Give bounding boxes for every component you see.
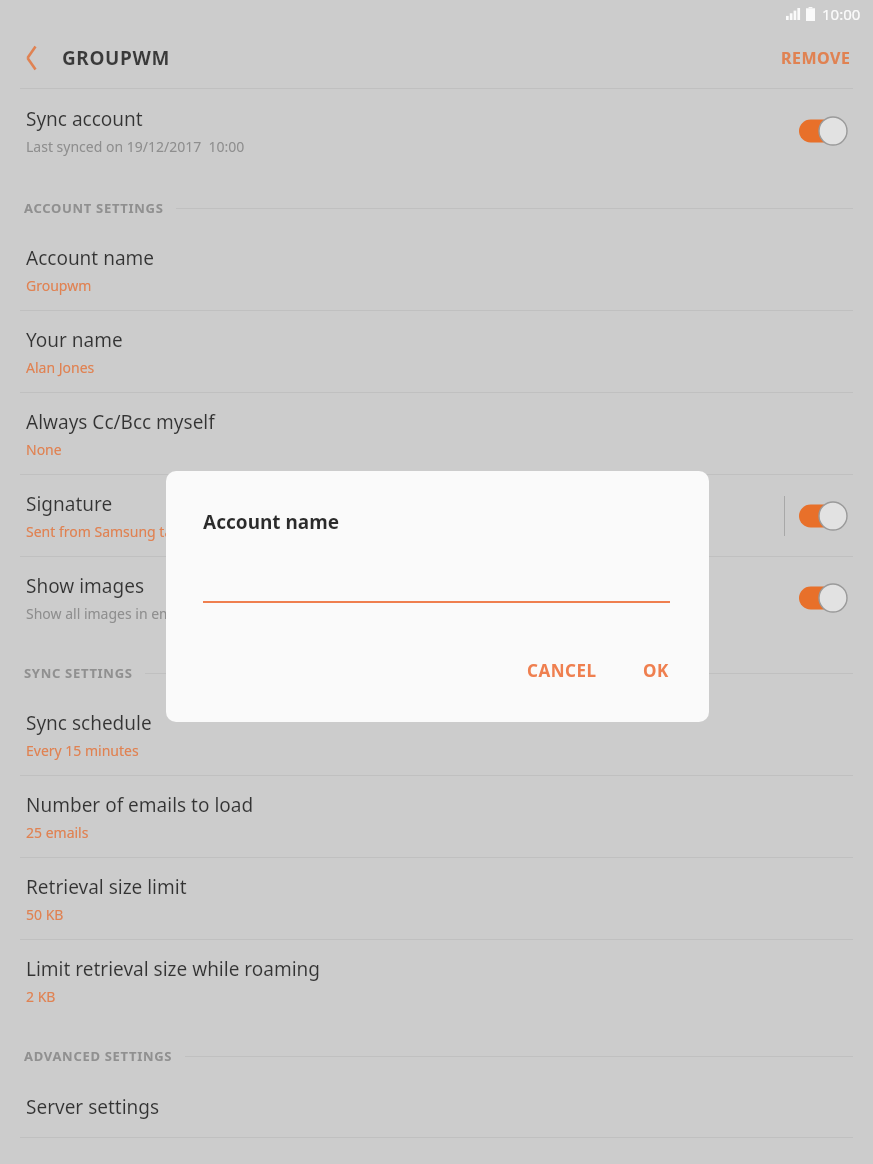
staticText: Server settings — [26, 1094, 160, 1120]
button[interactable]: Signature — [0, 475, 873, 556]
button[interactable]: Always Cc/Bcc myself — [0, 393, 873, 474]
staticText: Sent from Samsung tablet — [26, 522, 198, 541]
staticText: Sync schedule — [26, 710, 152, 736]
staticText: ACCOUNT SETTINGS — [24, 199, 164, 217]
staticText: Number of emails to load — [26, 792, 254, 818]
button[interactable]: CANCEL — [517, 651, 607, 690]
button[interactable]: Show images toggle — [799, 584, 847, 612]
button[interactable]: Server settings — [0, 1077, 873, 1137]
staticText: SYNC SETTINGS — [24, 664, 133, 682]
staticText: OK — [643, 659, 669, 682]
staticText: Account name — [26, 245, 155, 271]
button[interactable]: Account name — [0, 229, 873, 310]
staticText: REMOVE — [781, 47, 851, 69]
button[interactable]: Sync schedule — [0, 694, 873, 775]
staticText: None — [26, 440, 62, 459]
staticText: Show images — [26, 573, 144, 599]
staticText: Your name — [26, 327, 123, 353]
button[interactable]: Signature toggle — [799, 502, 847, 530]
button[interactable]: Sync account — [0, 89, 873, 173]
staticText: Groupwm — [26, 276, 92, 295]
staticText: Last synced on 19/12/2017 10:00 — [26, 137, 245, 156]
button[interactable]: Your name — [0, 311, 873, 392]
staticText: Signature — [26, 491, 113, 517]
staticText: Account name — [203, 509, 340, 535]
button[interactable]: Back — [10, 36, 54, 80]
staticText: Every 15 minutes — [26, 741, 139, 760]
staticText: Always Cc/Bcc myself — [26, 409, 215, 435]
button[interactable]: Retrieval size limit — [0, 858, 873, 939]
staticText: 25 emails — [26, 823, 89, 842]
staticText: Show all images in emails — [26, 604, 194, 623]
button[interactable]: REMOVE — [773, 39, 859, 77]
staticText: 10:00 — [822, 4, 861, 24]
staticText: Sync account — [26, 106, 143, 132]
button[interactable]: Limit retrieval size while roaming — [0, 940, 873, 1021]
staticText: Limit retrieval size while roaming — [26, 956, 321, 982]
staticText: 50 KB — [26, 905, 64, 924]
staticText: GROUPWM — [62, 45, 170, 71]
button[interactable]: OK — [633, 651, 679, 690]
button[interactable]: Sync account toggle — [799, 117, 847, 145]
button[interactable]: Show images — [0, 557, 873, 638]
button[interactable]: Number of emails to load — [0, 776, 873, 857]
staticText: ADVANCED SETTINGS — [24, 1047, 173, 1065]
staticText: Alan Jones — [26, 358, 95, 377]
staticText: 2 KB — [26, 987, 56, 1006]
staticText: Retrieval size limit — [26, 874, 187, 900]
staticText: CANCEL — [527, 659, 597, 682]
